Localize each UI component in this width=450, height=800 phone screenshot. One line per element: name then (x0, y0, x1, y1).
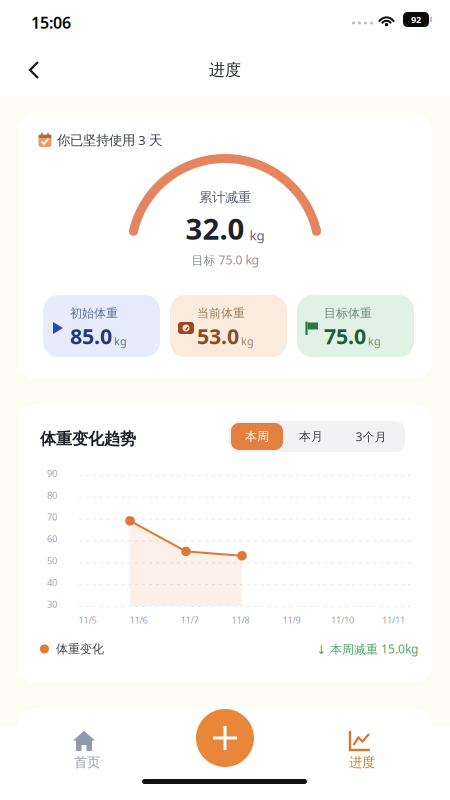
staticText: 11/10 (331, 614, 354, 626)
staticText: 53.0 (197, 322, 239, 350)
staticText: kg (368, 334, 381, 348)
button[interactable]: 进度 (320, 728, 404, 778)
staticText: 32.0 (185, 209, 244, 248)
staticText: 40 (47, 576, 57, 589)
button[interactable]: 添加记录 (196, 709, 254, 767)
staticText: 11/7 (180, 614, 198, 626)
staticText: 11/6 (129, 614, 147, 626)
staticText: 60 (47, 532, 57, 545)
staticText: 90 (47, 467, 57, 479)
staticText: 3个月 (355, 428, 386, 444)
staticText: 目标 75.0 kg (191, 252, 258, 268)
staticText: kg (249, 226, 264, 244)
staticText: 11/5 (78, 614, 96, 626)
staticText: 50 (47, 554, 57, 567)
staticText: 本月 (299, 429, 323, 444)
staticText: 80 (47, 489, 57, 501)
staticText: 进度 (209, 60, 241, 80)
staticText: 11/11 (382, 614, 405, 626)
staticText: 目标体重 (324, 306, 372, 321)
button[interactable]: 3个月 (339, 423, 403, 450)
staticText: 本周 (245, 429, 269, 444)
staticText: 11/9 (282, 614, 300, 626)
button[interactable]: 当前体重 (170, 295, 287, 357)
staticText: 30 (47, 598, 57, 610)
staticText: 当前体重 (197, 306, 245, 321)
staticText: kg (114, 334, 127, 348)
staticText: 85.0 (70, 322, 112, 350)
button[interactable]: 目标体重 (297, 295, 414, 357)
staticText: 75.0 (324, 322, 366, 350)
staticText: 体重变化趋势 (40, 429, 136, 449)
staticText: 你已坚持使用 3 天 (57, 131, 162, 149)
staticText: 70 (47, 511, 57, 523)
staticText: 初始体重 (70, 306, 118, 321)
staticText: 15:06 (31, 12, 71, 33)
staticText: 11/8 (231, 614, 249, 626)
staticText: 首页 (74, 754, 100, 770)
staticText: 92 (411, 13, 421, 26)
button[interactable]: 返回 (14, 50, 56, 90)
button[interactable]: 本月 (283, 423, 339, 450)
staticText: 进度 (349, 754, 375, 770)
button[interactable]: 初始体重 (43, 295, 160, 357)
staticText: kg (241, 334, 254, 348)
staticText: 体重变化 (56, 642, 104, 656)
staticText: ↓ 本周减重 15.0kg (316, 641, 418, 657)
button[interactable]: 本周 (231, 423, 283, 450)
staticText: 累计减重 (199, 189, 251, 205)
button[interactable]: 首页 (45, 728, 129, 778)
